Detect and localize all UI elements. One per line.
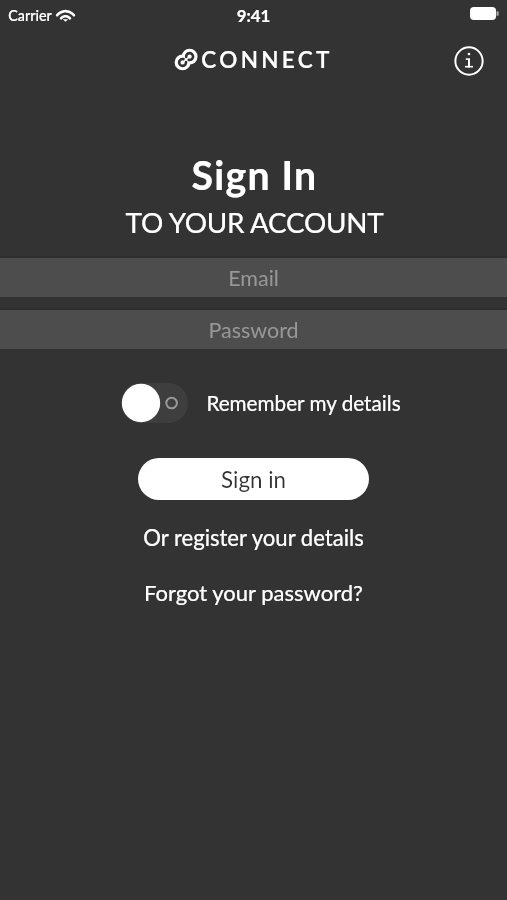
staticText: 9:41 — [0, 5, 507, 25]
staticText: CONNECT — [201, 46, 333, 73]
staticText: Password — [208, 317, 299, 343]
staticText: Email — [228, 265, 279, 291]
button[interactable]: Sign in — [138, 458, 369, 500]
staticText: Sign In — [1, 151, 507, 198]
staticText: Carrier — [8, 7, 52, 24]
button[interactable]: Forgot your password? — [0, 576, 507, 607]
button[interactable]: Email — [0, 256, 507, 297]
button[interactable]: Or register your details — [0, 522, 507, 553]
button[interactable]: Password — [0, 308, 507, 349]
button[interactable]: Remember my details — [121, 383, 188, 423]
staticText: Remember my details — [206, 391, 401, 416]
staticText: Or register your details — [143, 524, 364, 551]
button[interactable]: Information — [452, 44, 485, 77]
staticText: Sign in — [221, 466, 286, 493]
staticText: TO YOUR ACCOUNT — [1, 205, 507, 238]
staticText: Forgot your password? — [144, 579, 363, 605]
